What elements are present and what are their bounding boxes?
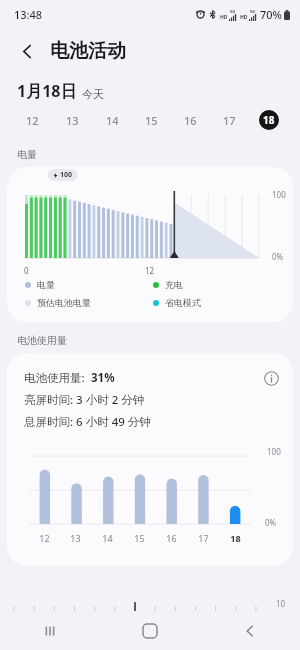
- button[interactable]: 返回: [10, 34, 44, 68]
- button[interactable]: 18: [249, 102, 288, 138]
- staticText: 预估电池电量: [37, 297, 91, 308]
- staticText: 电池使用量:: [24, 370, 85, 386]
- staticText: 14: [106, 113, 119, 128]
- button[interactable]: 15: [132, 102, 171, 138]
- button[interactable]: 13: [52, 102, 92, 138]
- staticText: 16: [166, 532, 177, 544]
- button[interactable]: 最近任务: [0, 612, 100, 650]
- button[interactable]: 详细信息: [258, 365, 284, 391]
- staticText: 12: [145, 265, 155, 276]
- staticText: 省电模式: [165, 297, 201, 308]
- button[interactable]: 17: [210, 102, 249, 138]
- staticText: 电量: [37, 279, 55, 290]
- staticText: 14: [102, 532, 113, 544]
- staticText: 今天: [82, 87, 104, 101]
- staticText: 17: [223, 113, 236, 128]
- button[interactable]: 返回: [200, 612, 300, 650]
- staticText: 电池活动: [50, 39, 126, 63]
- staticText: 10: [276, 598, 286, 609]
- button[interactable]: 14: [92, 102, 132, 138]
- staticText: 5G: [250, 9, 256, 14]
- staticText: 1月18日: [17, 80, 77, 102]
- staticText: 息屏时间: 6 小时 49 分钟: [24, 414, 151, 430]
- staticText: 15: [145, 113, 158, 128]
- staticText: 70%: [260, 7, 282, 22]
- staticText: HD: [240, 14, 248, 21]
- staticText: 100: [60, 170, 73, 180]
- staticText: 31%: [91, 370, 115, 386]
- button[interactable]: 16: [171, 102, 210, 138]
- staticText: 亮屏时间: 3 小时 2 分钟: [24, 392, 145, 408]
- staticText: 18: [230, 532, 241, 544]
- staticText: 15: [134, 532, 145, 544]
- staticText: 5G: [230, 9, 236, 14]
- staticText: HD: [220, 14, 228, 21]
- staticText: 充电: [165, 279, 183, 290]
- staticText: 13: [70, 532, 81, 544]
- staticText: 电量: [17, 148, 37, 161]
- staticText: 0%: [272, 251, 284, 262]
- staticText: 13:48: [14, 7, 43, 22]
- staticText: 100: [272, 189, 286, 200]
- staticText: 12: [26, 113, 39, 128]
- staticText: 18: [263, 113, 275, 127]
- staticText: 100: [267, 446, 281, 457]
- staticText: 13: [66, 113, 79, 128]
- staticText: 12: [39, 532, 50, 544]
- button[interactable]: 12: [12, 102, 52, 138]
- staticText: 16: [184, 113, 197, 128]
- staticText: 电池使用量: [17, 334, 67, 347]
- staticText: 17: [198, 532, 209, 544]
- staticText: 0: [24, 265, 29, 276]
- button[interactable]: 主屏幕: [100, 612, 200, 650]
- staticText: 0%: [265, 517, 277, 528]
